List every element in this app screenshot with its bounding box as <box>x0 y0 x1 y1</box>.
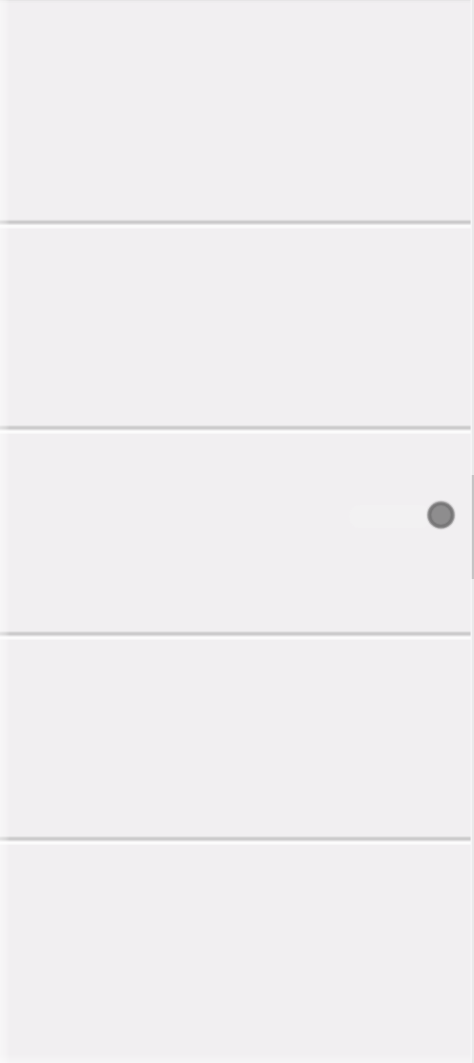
button[interactable]: Scrollbar <box>468 0 474 1063</box>
button[interactable]: Toggle setting <box>349 497 459 533</box>
button[interactable]: List item 3 <box>0 428 474 634</box>
button[interactable]: List item 2 <box>0 222 474 428</box>
button[interactable]: List item 5 <box>0 839 474 1063</box>
button[interactable]: List item 4 <box>0 634 474 839</box>
